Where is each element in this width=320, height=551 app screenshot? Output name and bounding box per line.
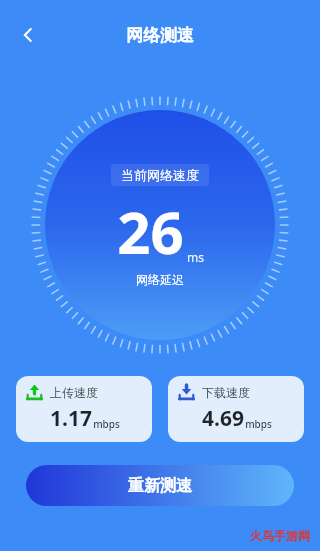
button[interactable]: Back [6,13,50,57]
staticText: 上传速度 [50,385,98,400]
staticText: 网络延迟 [136,272,184,287]
staticText: 26 [117,192,184,271]
staticText: mbps [245,417,272,431]
button[interactable]: 重新测速 [26,465,294,506]
button[interactable]: 下载速度 [168,376,304,442]
staticText: 1.17 [50,404,92,433]
button[interactable]: 上传速度 [16,376,152,442]
staticText: 火鸟手游网 [250,528,310,543]
staticText: 下载速度 [202,385,250,400]
staticText: 网络测速 [126,25,194,46]
staticText: 4.69 [202,404,244,433]
staticText: ms [187,249,204,265]
staticText: mbps [93,417,120,431]
staticText: 当前网络速度 [121,167,199,183]
staticText: 重新测速 [128,476,192,496]
